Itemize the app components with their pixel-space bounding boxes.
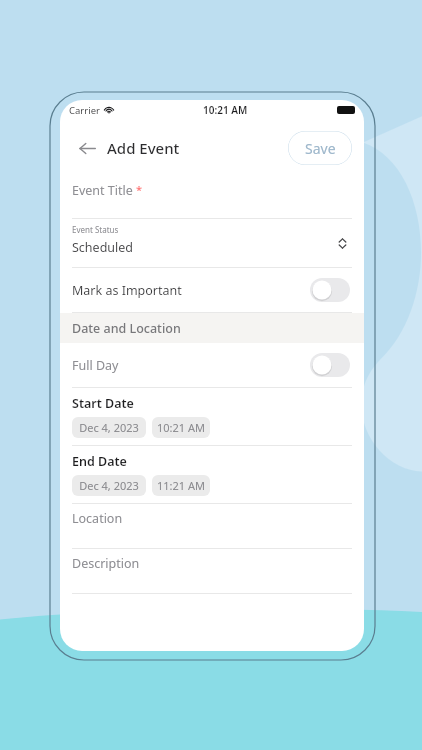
staticText: Start Date bbox=[72, 395, 134, 412]
staticText: Location bbox=[72, 510, 123, 527]
staticText: * bbox=[136, 182, 143, 197]
button[interactable]: 11:21 AM bbox=[152, 475, 210, 496]
button[interactable]: End Date bbox=[60, 446, 364, 504]
staticText: Add Event bbox=[107, 138, 180, 158]
staticText: Full Day bbox=[72, 357, 119, 374]
button[interactable]: Event Title bbox=[60, 176, 364, 219]
staticText: 10:21 AM bbox=[203, 103, 248, 117]
button[interactable]: Dec 4, 2023 bbox=[72, 417, 146, 438]
staticText: Dec 4, 2023 bbox=[79, 420, 139, 435]
button[interactable]: Save bbox=[288, 131, 352, 165]
button[interactable]: 10:21 AM bbox=[152, 417, 210, 438]
staticText: End Date bbox=[72, 453, 127, 470]
button[interactable]: Location bbox=[60, 504, 364, 549]
button[interactable]: Description bbox=[60, 549, 364, 594]
button[interactable]: Dec 4, 2023 bbox=[72, 475, 146, 496]
staticText: Date and Location bbox=[72, 320, 181, 337]
staticText: 11:21 AM bbox=[157, 478, 205, 493]
staticText: 10:21 AM bbox=[157, 420, 205, 435]
staticText: Mark as Important bbox=[72, 282, 182, 299]
staticText: Dec 4, 2023 bbox=[79, 478, 139, 493]
staticText: Description bbox=[72, 555, 140, 572]
staticText: Scheduled bbox=[72, 239, 134, 256]
button[interactable]: Change status bbox=[334, 235, 350, 251]
staticText: Event Title bbox=[72, 182, 133, 199]
staticText: Carrier bbox=[69, 104, 100, 117]
button[interactable]: Back bbox=[72, 133, 102, 163]
button[interactable]: Full Day bbox=[60, 343, 364, 387]
staticText: Save bbox=[305, 139, 336, 158]
button[interactable]: Mark as Important bbox=[60, 268, 364, 312]
button[interactable]: Event Status bbox=[60, 219, 364, 268]
button[interactable]: Start Date bbox=[60, 388, 364, 446]
staticText: Event Status bbox=[72, 224, 119, 235]
